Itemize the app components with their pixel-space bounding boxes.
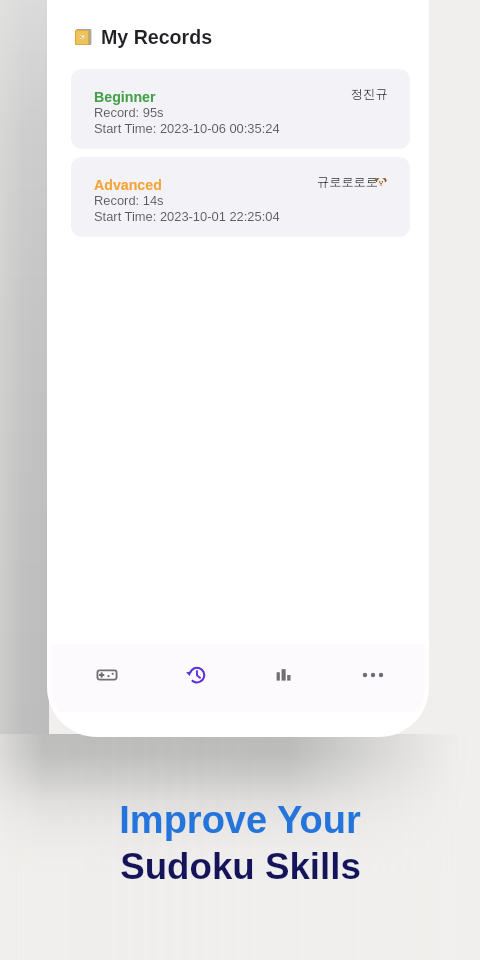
staticText: Improve Your (119, 799, 361, 841)
staticText: Start Time: 2023-10-01 22:25:04 (94, 209, 280, 223)
staticText: 정진규 (351, 86, 388, 101)
staticText: Advanced (94, 177, 162, 193)
staticText: Beginner (94, 89, 156, 105)
button[interactable]: Statistics (250, 647, 318, 703)
button[interactable]: More (339, 647, 407, 703)
staticText: Sudoku Skills (120, 846, 361, 887)
staticText: My Records (101, 26, 213, 48)
button[interactable]: History (162, 647, 230, 703)
staticText: Start Time: 2023-10-06 00:35:24 (94, 121, 280, 135)
staticText: 규로로로로 (317, 174, 378, 189)
button[interactable]: Beginner (71, 69, 410, 149)
staticText: Record: 14s (94, 193, 164, 207)
button[interactable]: Advanced (71, 157, 410, 237)
button[interactable]: Play (73, 647, 141, 703)
staticText: Record: 95s (94, 105, 164, 119)
